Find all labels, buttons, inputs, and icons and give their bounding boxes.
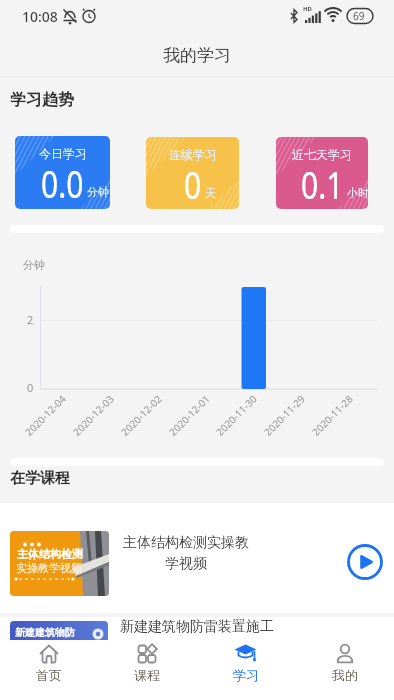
- staticText: 学习趋势: [10, 90, 74, 110]
- staticText: 2020-12-01: [166, 391, 213, 439]
- staticText: 主体结构检测: [17, 547, 83, 561]
- staticText: 分钟: [87, 185, 109, 199]
- staticText: 首页: [36, 667, 62, 683]
- button[interactable]: 近七天学习: [276, 137, 368, 209]
- staticText: 天: [205, 186, 216, 200]
- staticText: HD: [303, 5, 312, 13]
- staticText: 近七天学习: [292, 147, 352, 162]
- staticText: 实操教学视频: [16, 561, 82, 575]
- button[interactable]: 新建建筑物防: [0, 617, 394, 700]
- staticText: 新建建筑物防: [15, 626, 75, 639]
- staticText: 分钟: [23, 258, 45, 272]
- staticText: 主体结构检测实操教 学视频: [120, 534, 252, 572]
- staticText: 2020-11-29: [261, 391, 308, 439]
- button[interactable]: 课程: [98, 640, 196, 700]
- button[interactable]: 首页: [0, 640, 98, 700]
- staticText: 今日学习: [39, 146, 87, 161]
- button[interactable]: [347, 544, 383, 580]
- staticText: 连续学习: [169, 147, 217, 162]
- staticText: 新建建筑物防雷装置施工: [120, 618, 274, 636]
- staticText: 2020-12-03: [70, 391, 117, 439]
- staticText: 0.1: [301, 159, 344, 209]
- staticText: 小时: [347, 186, 368, 200]
- staticText: 2020-12-04: [22, 391, 69, 439]
- staticText: 2: [27, 312, 34, 327]
- staticText: 69: [353, 9, 365, 23]
- button[interactable]: 连续学习: [146, 137, 239, 209]
- staticText: 0.0: [41, 158, 84, 209]
- staticText: 在学课程: [10, 469, 70, 488]
- staticText: 我的: [332, 667, 358, 683]
- button[interactable]: 主体结构检测: [0, 503, 394, 613]
- button[interactable]: 我的: [295, 640, 394, 700]
- staticText: 课程: [134, 667, 160, 683]
- staticText: 2020-11-28: [309, 391, 356, 439]
- button[interactable]: 学习: [196, 640, 295, 700]
- staticText: 2020-12-02: [118, 391, 165, 439]
- staticText: 2020-11-30: [213, 391, 260, 439]
- staticText: 学习: [233, 667, 259, 683]
- staticText: 0: [27, 380, 34, 395]
- button[interactable]: 今日学习: [15, 136, 110, 209]
- staticText: 我的学习: [163, 45, 231, 66]
- staticText: 10:08: [22, 7, 58, 26]
- staticText: 0: [184, 159, 202, 209]
